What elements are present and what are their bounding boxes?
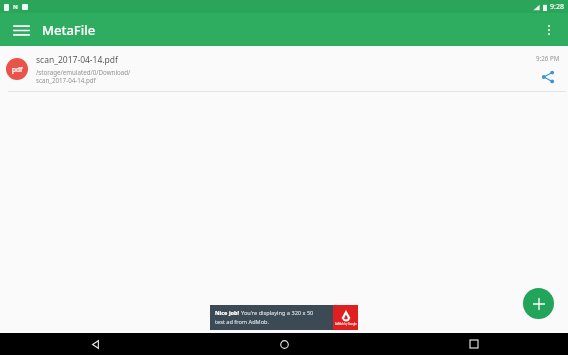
staticText: You're displaying a 320 x 50 [241,309,314,317]
staticText: test ad from AdMob. [215,318,269,326]
staticText: 9:28 [550,2,564,12]
button[interactable]: Back [0,333,190,355]
button[interactable]: pdf [0,46,568,91]
staticText: 9:26 PM [536,54,560,62]
button[interactable]: Add file [523,288,554,319]
staticText: Nice job! [215,309,241,317]
staticText: AdMob by Google [335,322,357,326]
button[interactable]: Recent apps [379,333,568,355]
button[interactable]: More options [536,17,562,43]
button[interactable]: Open navigation drawer [8,17,34,43]
staticText: N [13,3,18,11]
staticText: /storage/emulated/0/Download/ [36,68,131,76]
staticText: MetaFile [42,21,96,39]
staticText: scan_2017-04-14.pdf [36,54,118,66]
staticText: scan_2017-04-14.pdf [36,76,96,84]
button[interactable]: Share [538,67,558,87]
button[interactable]: AdMob test ad [210,305,358,330]
staticText: pdf [12,65,23,74]
button[interactable]: Home [190,333,379,355]
